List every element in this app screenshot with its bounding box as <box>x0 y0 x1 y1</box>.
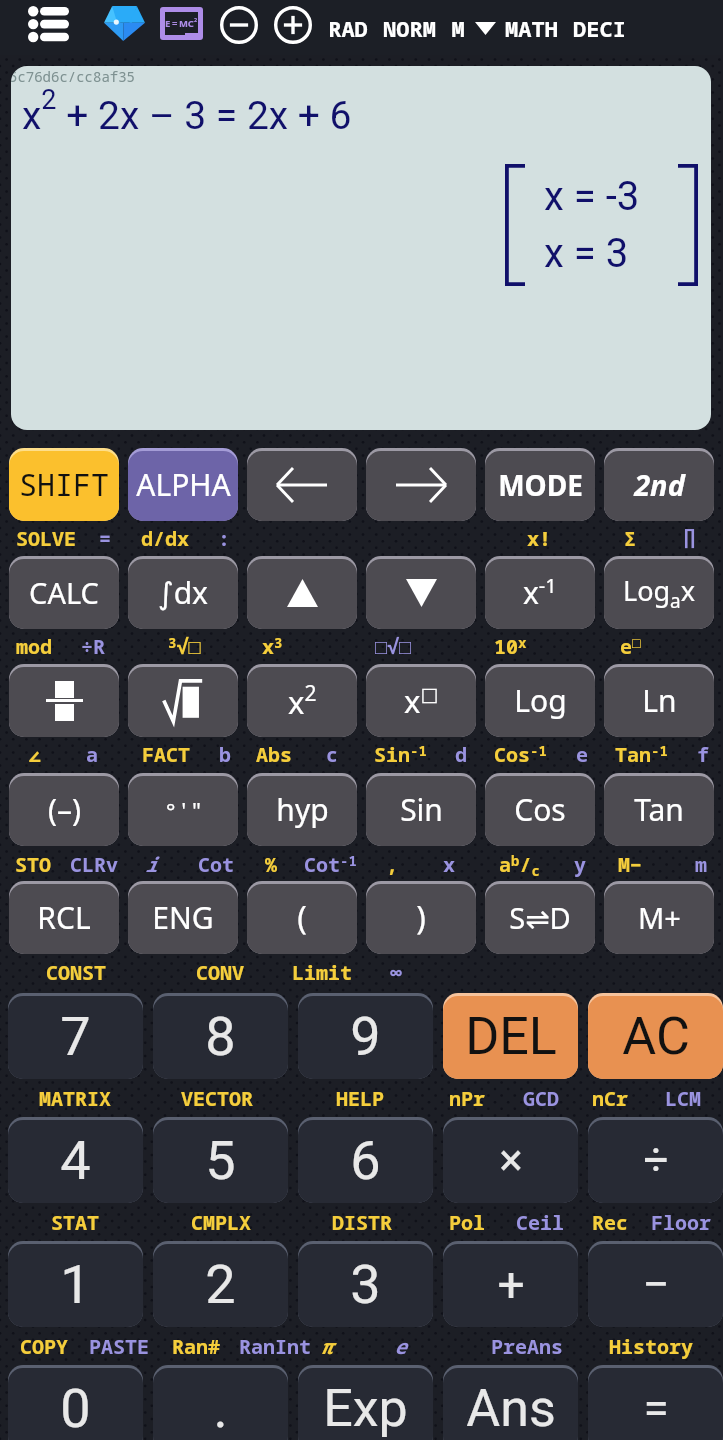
button[interactable]: Cos <box>485 773 595 846</box>
button[interactable]: MODE <box>485 448 595 521</box>
staticText: x3 <box>262 633 283 660</box>
button[interactable]: Menu <box>24 3 73 44</box>
button[interactable]: hyp <box>247 773 357 846</box>
button[interactable]: ( <box>247 881 357 954</box>
staticText: ÷ <box>643 1134 669 1186</box>
button[interactable]: 3 <box>298 1241 433 1327</box>
button[interactable]: . <box>153 1365 288 1440</box>
staticText: π <box>320 1333 332 1360</box>
button[interactable]: Fraction <box>9 664 119 737</box>
staticText: COPY <box>20 1333 68 1360</box>
staticText: 2 <box>205 1253 236 1316</box>
button[interactable]: Ans <box>443 1365 578 1440</box>
staticText: GCD <box>523 1085 559 1112</box>
staticText: % <box>265 851 277 878</box>
staticText: MATH <box>505 13 558 43</box>
staticText: ENG <box>152 897 214 938</box>
button[interactable]: Sin <box>366 773 476 846</box>
button[interactable]: Zoom in <box>273 5 313 45</box>
button[interactable]: 5 <box>153 1117 288 1203</box>
button[interactable]: 7 <box>8 993 143 1079</box>
button[interactable]: 8 <box>153 993 288 1079</box>
staticText: STAT <box>51 1209 99 1236</box>
button[interactable]: 1 <box>8 1241 143 1327</box>
button[interactable]: 0 <box>8 1365 143 1440</box>
button[interactable]: x□ <box>366 664 476 737</box>
button[interactable]: x-1 <box>485 556 595 629</box>
button[interactable]: Tan <box>604 773 714 846</box>
button[interactable]: − <box>588 1241 723 1327</box>
button[interactable]: Ln <box>604 664 714 737</box>
staticText: 7 <box>60 1005 91 1068</box>
staticText: x□ <box>404 680 439 722</box>
button[interactable]: CALC <box>9 556 119 629</box>
button[interactable]: 2nd <box>604 448 714 521</box>
button[interactable]: Down <box>366 556 476 629</box>
staticText: = <box>99 525 111 552</box>
button[interactable]: M+ <box>604 881 714 954</box>
button[interactable]: (–) <box>9 773 119 846</box>
staticText: CONV <box>196 959 244 986</box>
button[interactable]: DEL <box>443 993 578 1079</box>
button[interactable]: ÷ <box>588 1117 723 1203</box>
button[interactable]: + <box>443 1241 578 1327</box>
staticText: + <box>497 1256 525 1312</box>
staticText: e <box>576 741 588 768</box>
button[interactable]: S⇌D <box>485 881 595 954</box>
button[interactable]: Right <box>366 448 476 521</box>
button[interactable]: Square root <box>128 664 238 737</box>
staticText: DISTR <box>332 1209 392 1236</box>
staticText: SHIFT <box>19 464 109 505</box>
button[interactable]: Up <box>247 556 357 629</box>
button[interactable]: = <box>588 1365 723 1440</box>
button[interactable]: Memory menu <box>473 16 497 40</box>
button[interactable]: RCL <box>9 881 119 954</box>
button[interactable]: 9 <box>298 993 433 1079</box>
button[interactable]: Left <box>247 448 357 521</box>
staticText: RCL <box>37 897 91 938</box>
button[interactable]: ALPHA <box>128 448 238 521</box>
staticText: PreAns <box>491 1333 563 1360</box>
button[interactable]: x2 <box>247 664 357 737</box>
button[interactable]: 6 <box>298 1117 433 1203</box>
staticText: M <box>451 13 465 43</box>
staticText: f <box>697 741 709 768</box>
button[interactable]: M <box>449 3 467 53</box>
staticText: SOLVE <box>16 525 76 552</box>
staticText: PASTE <box>89 1333 149 1360</box>
button[interactable]: × <box>443 1117 578 1203</box>
button[interactable]: DECI <box>571 3 628 53</box>
button[interactable]: ∫dx <box>128 556 238 629</box>
button[interactable]: ° ' " <box>128 773 238 846</box>
button[interactable]: Zoom out <box>219 5 259 45</box>
button[interactable]: NORM <box>381 3 438 53</box>
staticText: M− <box>618 851 642 878</box>
button[interactable]: Exp <box>298 1365 433 1440</box>
staticText: ∏ <box>683 525 696 548</box>
button[interactable]: 5c76d6c/cc8af35 <box>11 66 711 430</box>
other: Left <box>275 467 329 503</box>
staticText: Cos-1 <box>494 741 547 768</box>
button[interactable]: Premium <box>104 6 145 41</box>
button[interactable]: RAD <box>326 3 370 53</box>
staticText: Logax <box>623 572 696 614</box>
button[interactable]: AC <box>588 993 723 1079</box>
staticText: MODE <box>498 466 583 504</box>
staticText: □√□ <box>375 633 411 660</box>
staticText: a <box>86 741 98 768</box>
button[interactable]: 2 <box>153 1241 288 1327</box>
button[interactable]: MATH <box>503 3 560 53</box>
staticText: ° ' " <box>166 795 201 825</box>
staticText: i <box>145 851 157 878</box>
button[interactable]: ) <box>366 881 476 954</box>
button[interactable]: Log <box>485 664 595 737</box>
staticText: e□ <box>620 633 641 660</box>
button[interactable]: Formulas <box>159 6 203 40</box>
other: Up <box>287 579 318 607</box>
staticText: FACT <box>142 741 190 768</box>
button[interactable]: 4 <box>8 1117 143 1203</box>
button[interactable]: SHIFT <box>9 448 119 521</box>
button[interactable]: Logax <box>604 556 714 629</box>
staticText: ∞ <box>390 959 402 986</box>
button[interactable]: ENG <box>128 881 238 954</box>
